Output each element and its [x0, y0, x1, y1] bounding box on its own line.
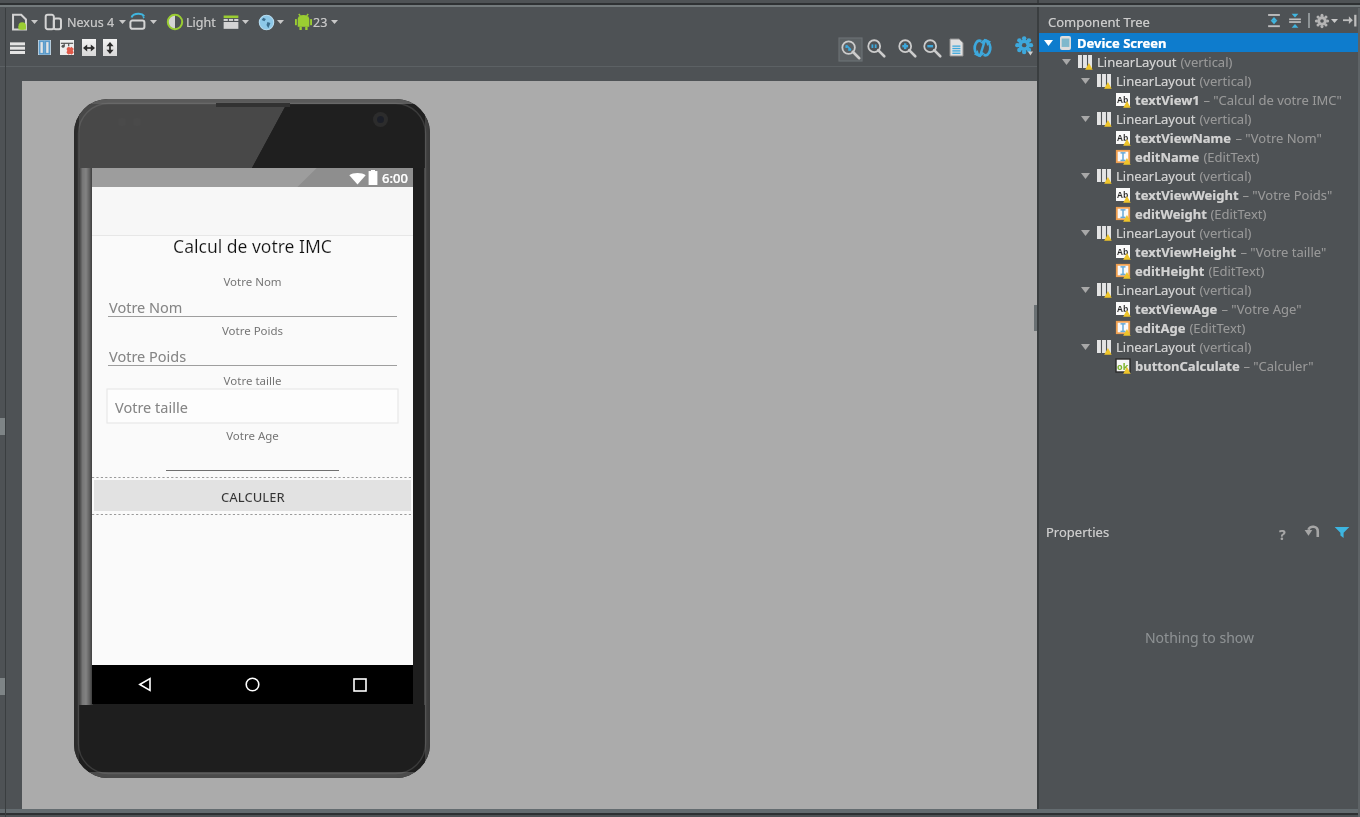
button[interactable]: Match height — [103, 39, 117, 56]
button[interactable]: Layout mode — [10, 42, 25, 54]
staticText: Nexus 4 — [67, 14, 115, 31]
staticText: – "Votre Age" — [1218, 300, 1302, 318]
button[interactable]: Show layout file — [950, 39, 963, 56]
staticText: Ab — [1117, 246, 1129, 258]
staticText: Light — [186, 14, 216, 31]
staticText: Votre Nom — [92, 274, 413, 290]
staticText: Properties — [1046, 523, 1110, 541]
button[interactable]: LinearLayout — [1039, 223, 1360, 242]
staticText: (vertical) — [1196, 338, 1252, 356]
button[interactable]: Back — [92, 665, 199, 704]
staticText: Votre taille — [115, 397, 188, 417]
staticText: Votre Poids — [92, 323, 413, 339]
button[interactable]: Refresh — [974, 38, 991, 58]
staticText: Votre Age — [92, 428, 413, 444]
button[interactable]: Ab — [1039, 185, 1360, 204]
staticText: textViewHeight — [1135, 243, 1237, 261]
button[interactable]: Theme — [223, 11, 249, 33]
button[interactable]: Zoom to fit — [839, 38, 862, 61]
staticText: Ab — [1117, 94, 1129, 106]
button[interactable]: Ab — [1039, 299, 1360, 318]
button[interactable]: Ab — [1039, 242, 1360, 261]
staticText: buttonCalculate — [1135, 357, 1240, 375]
button[interactable]: Votre Poids — [108, 342, 397, 366]
staticText: (vertical) — [1196, 281, 1252, 299]
button[interactable]: Votre taille — [107, 389, 398, 423]
staticText: textViewAge — [1135, 300, 1218, 318]
button[interactable]: Light — [166, 11, 216, 33]
button[interactable]: editWeight — [1039, 204, 1360, 223]
button[interactable]: LinearLayout — [1039, 166, 1360, 185]
button[interactable]: Expand all — [1267, 12, 1281, 29]
staticText: editWeight — [1135, 205, 1207, 223]
button[interactable]: Zoom out — [923, 39, 941, 57]
staticText: (vertical) — [1196, 72, 1252, 90]
staticText: LinearLayout — [1116, 338, 1196, 356]
staticText: (vertical) — [1196, 167, 1252, 185]
staticText: Component Tree — [1048, 13, 1150, 31]
staticText: LinearLayout — [1116, 167, 1196, 185]
button[interactable]: Collapse all — [1288, 12, 1302, 29]
button[interactable]: LinearLayout — [1039, 52, 1360, 71]
staticText: – "Votre Nom" — [1232, 129, 1322, 147]
button[interactable]: ok — [1039, 356, 1360, 375]
staticText: Nothing to show — [1039, 628, 1360, 647]
button[interactable]: Match width — [82, 39, 96, 56]
button[interactable]: Locale — [259, 11, 284, 33]
staticText: 6:00 — [382, 169, 408, 187]
button[interactable]: Hide panel — [1343, 13, 1357, 28]
staticText: (EditText) — [1207, 205, 1267, 223]
button[interactable]: Layout file — [11, 11, 38, 33]
staticText: Votre Nom — [109, 297, 183, 317]
button[interactable]: Settings — [1016, 37, 1033, 57]
button[interactable]: Actual size — [867, 39, 885, 57]
staticText: textViewName — [1135, 129, 1232, 147]
button[interactable]: Filter — [1334, 524, 1350, 540]
staticText: LinearLayout — [1116, 72, 1196, 90]
button[interactable]: LinearLayout — [1039, 109, 1360, 128]
button[interactable]: Device Screen — [1039, 33, 1360, 52]
staticText: textView1 — [1135, 91, 1200, 109]
button[interactable]: Tree options — [1315, 12, 1338, 29]
button[interactable]: Nexus 4 — [45, 11, 126, 33]
button[interactable]: LinearLayout — [1039, 337, 1360, 356]
staticText: editAge — [1135, 319, 1186, 337]
button[interactable]: Votre Age — [166, 449, 339, 471]
staticText: Ab — [1117, 303, 1129, 315]
button[interactable]: LinearLayout — [1039, 71, 1360, 90]
button[interactable]: Zoom in — [898, 39, 916, 57]
staticText: CALCULER — [221, 488, 285, 506]
staticText: – "Votre Poids" — [1239, 186, 1333, 204]
button[interactable]: LinearLayout — [1039, 280, 1360, 299]
staticText: 23 — [313, 14, 328, 31]
staticText: LinearLayout — [1116, 224, 1196, 242]
button[interactable]: Ab — [1039, 128, 1360, 147]
staticText: LinearLayout — [1097, 53, 1177, 71]
button[interactable]: CALCULER — [94, 480, 411, 511]
button[interactable]: editAge — [1039, 318, 1360, 337]
staticText: Ab — [1117, 132, 1129, 144]
button[interactable]: Reset — [1304, 524, 1320, 540]
staticText: LinearLayout — [1116, 110, 1196, 128]
staticText: Device Screen — [1077, 34, 1167, 52]
staticText: (vertical) — [1177, 53, 1233, 71]
button[interactable]: Votre Nom — [108, 293, 397, 317]
button[interactable]: editName — [1039, 147, 1360, 166]
button[interactable]: editHeight — [1039, 261, 1360, 280]
button[interactable]: Help — [1275, 525, 1290, 540]
staticText: ? — [1279, 525, 1286, 540]
staticText: Calcul de votre IMC — [92, 234, 413, 258]
staticText: Ab — [1117, 189, 1129, 201]
staticText: (EditText) — [1205, 262, 1265, 280]
staticText: Votre taille — [92, 373, 413, 389]
button[interactable]: Errors — [60, 40, 74, 55]
staticText: – "Calcul de votre IMC" — [1200, 91, 1342, 109]
button[interactable]: 23 — [295, 11, 338, 33]
staticText: LinearLayout — [1116, 281, 1196, 299]
button[interactable]: Ab — [1039, 90, 1360, 109]
staticText: (EditText) — [1200, 148, 1260, 166]
button[interactable]: Recents — [306, 665, 413, 704]
button[interactable]: Blueprint mode — [38, 40, 51, 55]
button[interactable]: Orientation — [128, 11, 157, 33]
button[interactable]: Home — [199, 665, 306, 704]
